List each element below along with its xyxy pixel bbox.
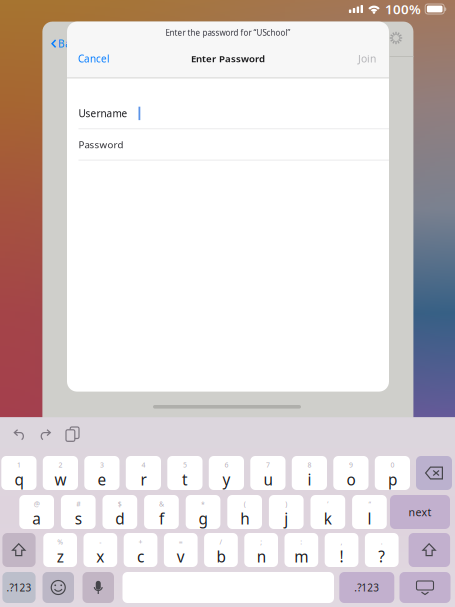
staticText: . <box>381 537 383 546</box>
staticText: , <box>341 537 343 546</box>
button[interactable]: 0 <box>375 456 410 490</box>
button[interactable]: 2 <box>43 456 78 490</box>
staticText: v <box>177 546 185 567</box>
staticText: 100% <box>385 0 421 18</box>
staticText: u <box>263 469 272 490</box>
button[interactable]: ( <box>227 495 262 529</box>
staticText: k <box>324 508 332 529</box>
staticText: “ <box>368 499 370 508</box>
staticText: Password <box>78 138 123 151</box>
button[interactable]: Back <box>48 32 74 55</box>
button[interactable]: 4 <box>126 456 161 490</box>
staticText: p <box>388 469 397 490</box>
staticText: n <box>257 546 266 567</box>
staticText: r <box>140 469 146 490</box>
staticText: t <box>182 469 188 490</box>
button[interactable]: Undo <box>13 429 25 440</box>
button[interactable]: Numbers <box>2 572 36 603</box>
button[interactable]: - <box>83 533 117 567</box>
button[interactable]: / <box>204 533 238 567</box>
staticText: w <box>54 469 66 490</box>
button[interactable]: + <box>124 533 157 567</box>
button[interactable]: 7 <box>250 456 285 490</box>
staticText: y <box>222 469 230 490</box>
staticText: = <box>179 537 183 546</box>
button[interactable]: Numbers <box>339 572 394 603</box>
button[interactable]: Join <box>347 45 389 72</box>
staticText: ) <box>285 499 287 508</box>
staticText: e <box>97 469 106 490</box>
staticText: 7 <box>266 460 270 469</box>
button[interactable]: : <box>284 533 318 567</box>
staticText: d <box>115 508 124 529</box>
staticText: Enter Password <box>191 52 265 65</box>
button[interactable]: Cancel <box>67 45 121 72</box>
button[interactable]: Next <box>390 495 450 529</box>
staticText: + <box>139 537 143 546</box>
button[interactable]: “ <box>352 495 387 529</box>
staticText: $ <box>118 499 122 508</box>
staticText: a <box>32 508 41 529</box>
staticText: ( <box>244 499 246 508</box>
button[interactable]: , <box>325 533 358 567</box>
button[interactable]: ) <box>269 495 304 529</box>
staticText: 4 <box>141 460 145 469</box>
button[interactable]: 1 <box>1 456 36 490</box>
button[interactable]: Delete <box>416 456 452 490</box>
staticText: Ba <box>58 37 71 50</box>
staticText: / <box>219 537 222 546</box>
staticText: x <box>96 546 104 567</box>
button[interactable]: ; <box>244 533 278 567</box>
button[interactable]: Shift <box>2 533 36 567</box>
button[interactable]: 9 <box>333 456 368 490</box>
staticText: m <box>294 546 308 567</box>
button[interactable]: ’ <box>310 495 345 529</box>
staticText: : <box>300 537 302 546</box>
button[interactable]: @ <box>19 495 54 529</box>
button[interactable]: Paste <box>66 427 79 441</box>
staticText: f <box>159 508 164 529</box>
button[interactable]: = <box>164 533 198 567</box>
staticText: h <box>240 508 249 529</box>
button[interactable]: Dictation <box>82 572 114 603</box>
button[interactable]: 3 <box>84 456 119 490</box>
button[interactable]: 6 <box>209 456 244 490</box>
staticText: 5 <box>183 460 187 469</box>
staticText: z <box>57 546 64 567</box>
button[interactable]: # <box>61 495 96 529</box>
staticText: 0 <box>390 460 394 469</box>
staticText: 6 <box>224 460 228 469</box>
staticText: % <box>57 537 63 546</box>
staticText: * <box>201 499 205 508</box>
button[interactable]: & <box>144 495 179 529</box>
staticText: 9 <box>349 460 353 469</box>
staticText: b <box>216 546 225 567</box>
button[interactable]: Redo <box>40 429 51 440</box>
button[interactable]: $ <box>102 495 137 529</box>
staticText: c <box>137 546 144 567</box>
staticText: # <box>76 499 80 508</box>
button[interactable]: * <box>186 495 220 529</box>
button[interactable]: Hide Keyboard <box>399 572 450 603</box>
button[interactable]: % <box>43 533 77 567</box>
staticText: j <box>284 508 288 529</box>
staticText: ; <box>260 537 262 546</box>
button[interactable]: Emoji <box>42 572 74 603</box>
staticText: ’ <box>327 499 328 508</box>
staticText: ? <box>378 546 385 567</box>
staticText: g <box>199 508 208 529</box>
staticText: @ <box>34 499 40 508</box>
button[interactable]: Shift <box>409 533 450 567</box>
staticText: l <box>367 508 371 529</box>
button[interactable]: 8 <box>292 456 327 490</box>
staticText: - <box>99 537 101 546</box>
staticText: .?123 <box>6 581 31 594</box>
button[interactable]: 5 <box>167 456 202 490</box>
staticText: Cancel <box>78 52 110 65</box>
staticText: Enter the password for “USchool” <box>165 27 290 38</box>
staticText: ! <box>340 546 344 567</box>
staticText: .?123 <box>354 581 379 594</box>
staticText: Join <box>358 52 376 65</box>
button[interactable]: . <box>365 533 399 567</box>
